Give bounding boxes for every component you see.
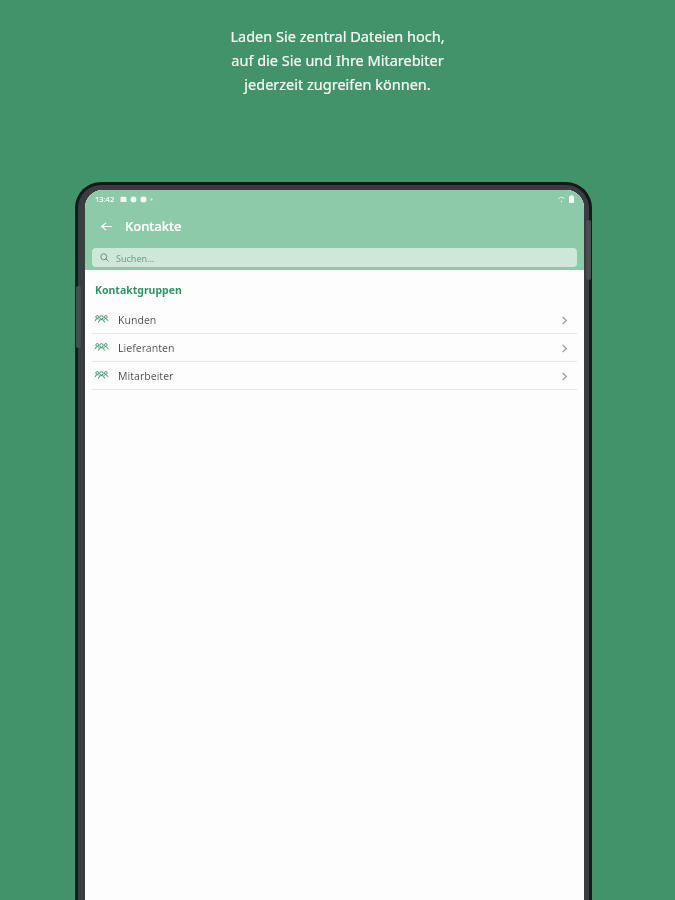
- staticText: auf die Sie und Ihre Mitarebiter: [231, 50, 444, 70]
- staticText: jederzeit zugreifen können.: [244, 74, 431, 94]
- staticText: Kontakte: [125, 217, 182, 235]
- button[interactable]: Kunden: [85, 306, 584, 333]
- button[interactable]: Mitarbeiter: [85, 362, 584, 389]
- button[interactable]: Lieferanten: [85, 334, 584, 361]
- staticText: Lieferanten: [118, 341, 175, 355]
- other: Öffnen: [556, 312, 572, 328]
- button[interactable]: Zurück: [93, 213, 119, 239]
- staticText: Kontaktgruppen: [95, 283, 182, 297]
- staticText: 13:42: [95, 194, 115, 204]
- other: Öffnen: [556, 368, 572, 384]
- staticText: Kunden: [118, 313, 157, 327]
- other: Öffnen: [556, 340, 572, 356]
- button[interactable]: Suchen...: [92, 248, 577, 267]
- staticText: Laden Sie zentral Dateien hoch,: [230, 26, 445, 46]
- staticText: Mitarbeiter: [118, 369, 174, 383]
- staticText: Suchen...: [116, 252, 155, 264]
